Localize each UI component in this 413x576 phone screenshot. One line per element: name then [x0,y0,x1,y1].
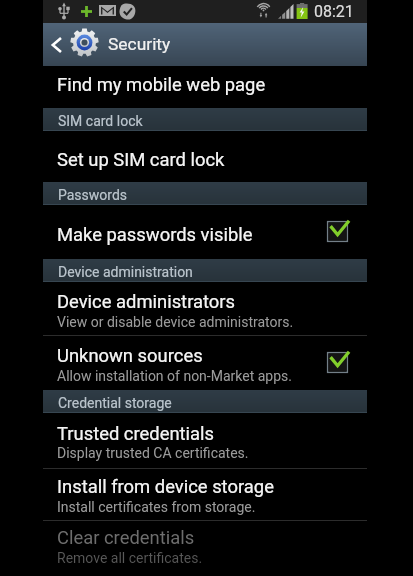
staticText: Security [108,34,171,54]
staticText: Allow installation of non-Market apps. [57,368,292,384]
staticText: Display trusted CA certificates. [57,445,249,461]
button[interactable]: Install from device storage [43,469,367,521]
staticText: Clear credentials [57,527,195,549]
staticText: Credential storage [58,395,172,411]
button[interactable]: Toggle [327,221,348,242]
button[interactable]: Unknown sources [43,336,367,390]
staticText: Remove all certificates. [57,550,203,566]
staticText: Passwords [58,187,128,203]
staticText: Find my mobile web page [57,74,266,96]
button[interactable] [43,23,367,66]
button[interactable]: Toggle [327,352,348,373]
button[interactable]: Clear credentials [43,521,367,576]
button[interactable]: Trusted credentials [43,413,367,469]
button[interactable]: Navigate up [43,23,70,66]
staticText: Install from device storage [57,476,274,498]
staticText: Install certificates from storage. [57,499,256,515]
button[interactable]: Find my mobile web page [43,66,367,108]
button[interactable]: Device administrators [43,282,367,336]
staticText: View or disable device administrators. [57,314,294,330]
staticText: Unknown sources [57,345,203,367]
staticText: Set up SIM card lock [57,149,225,171]
button[interactable]: Make passwords visible [43,205,367,260]
staticText: Trusted credentials [57,423,215,445]
staticText: 08:21 [314,2,354,21]
button[interactable]: Set up SIM card lock [43,131,367,182]
staticText: Device administration [58,264,193,280]
staticText: SIM card lock [58,113,143,129]
staticText: Device administrators [57,291,236,313]
staticText: Make passwords visible [57,224,253,246]
